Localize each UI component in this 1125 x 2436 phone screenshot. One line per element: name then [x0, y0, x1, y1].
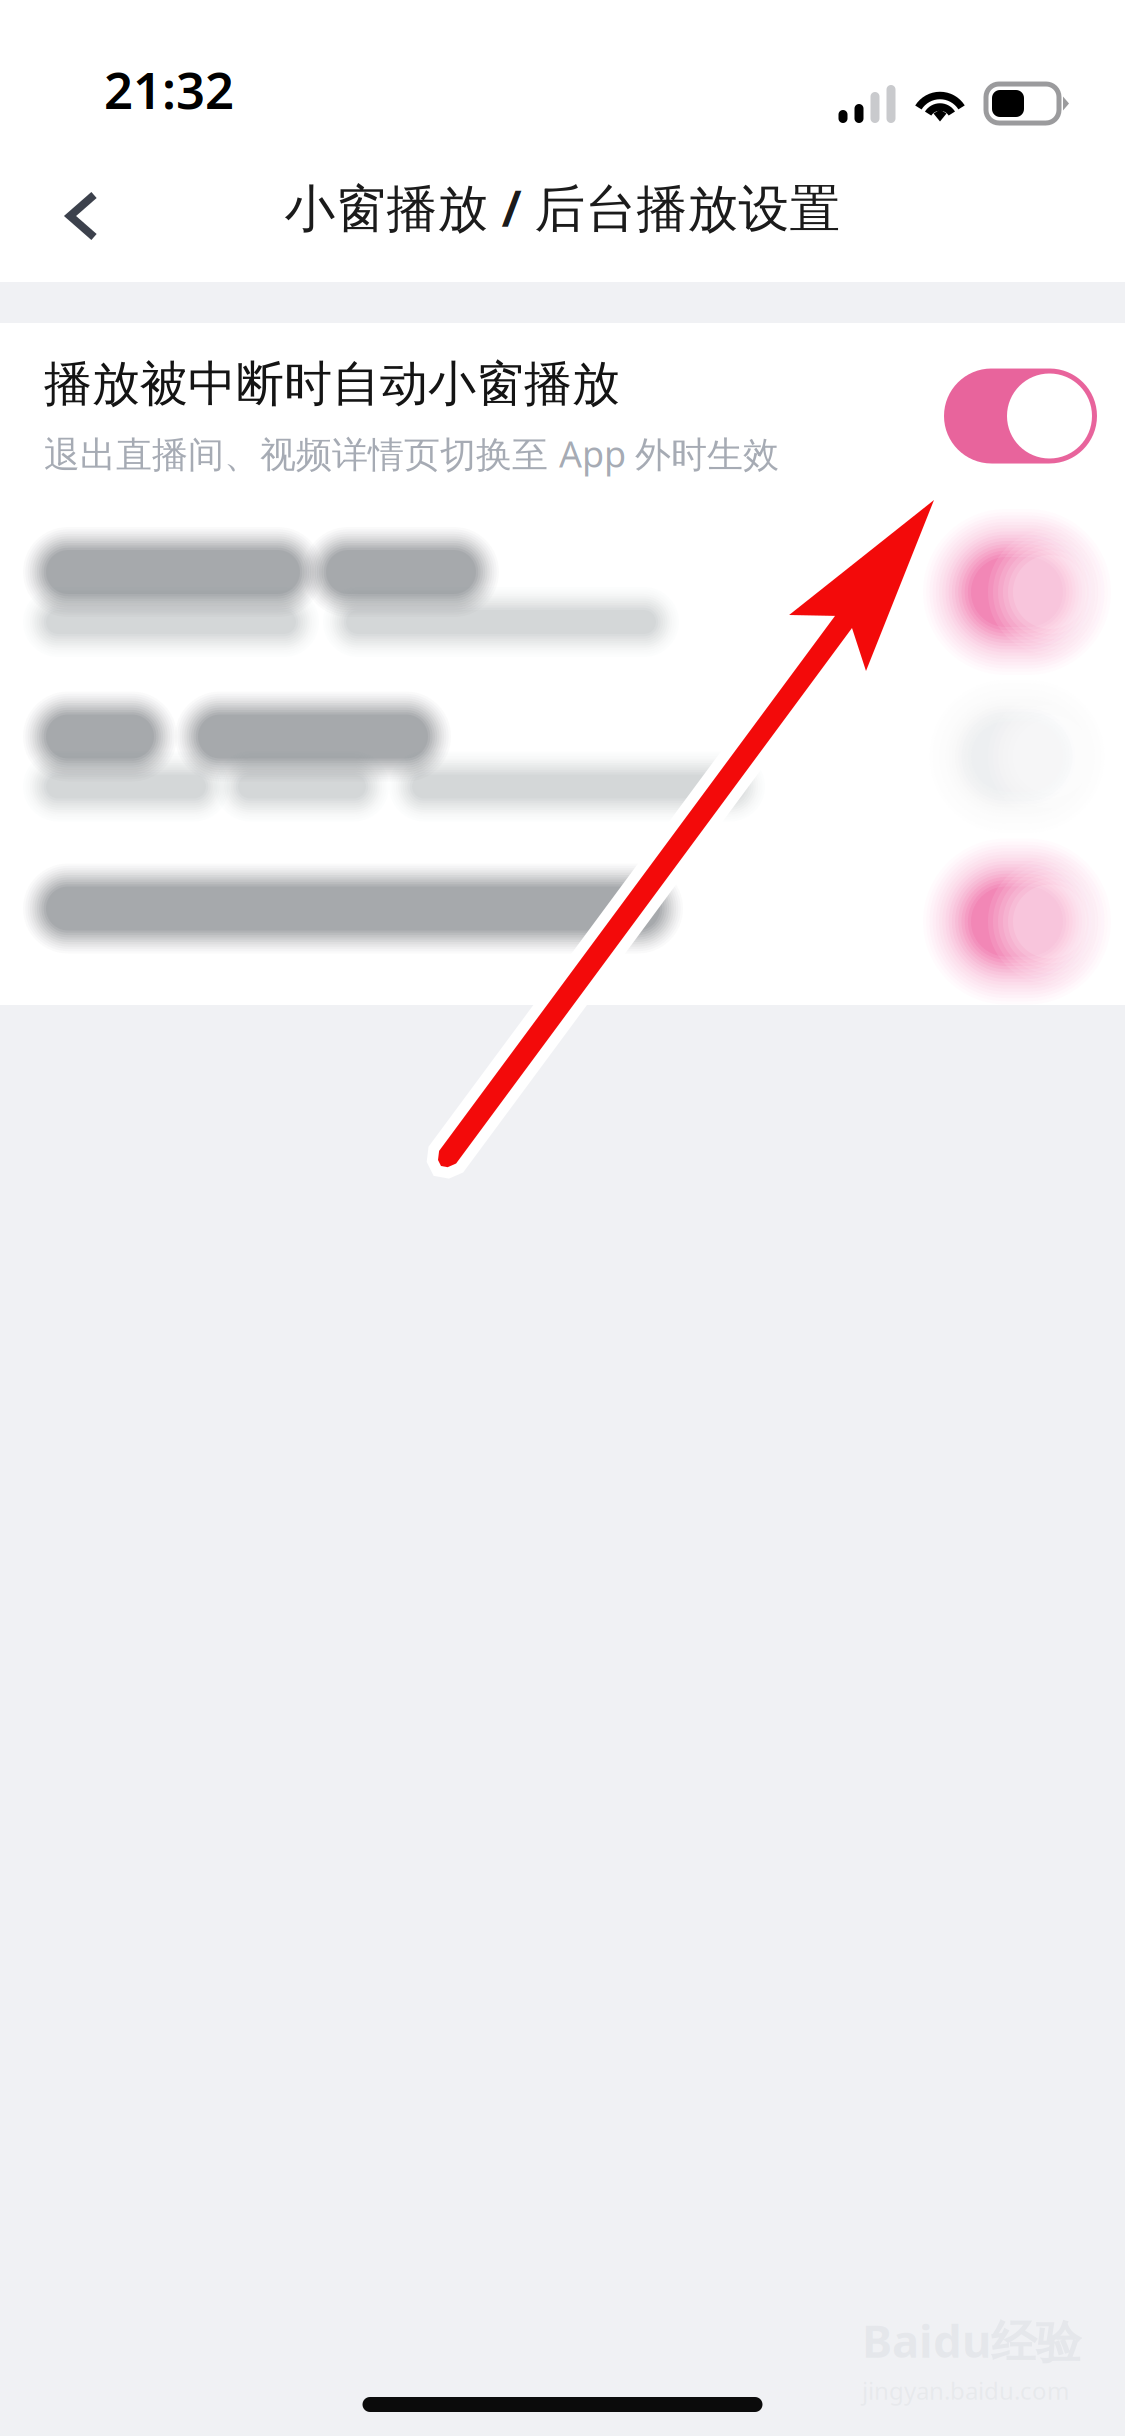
button[interactable]: 返回 [0, 137, 140, 277]
staticText: 21:32 [104, 56, 234, 123]
button[interactable]: 播放被中断时自动小窗播放 [0, 323, 1125, 509]
staticText: 退出直播间、视频详情页切换至 App 外时生效 [44, 430, 779, 477]
staticText: Baidu经验 [862, 2310, 1081, 2370]
staticText: 小窗播放 / 后台播放设置 [284, 173, 840, 241]
staticText: 播放被中断时自动小窗播放 [44, 355, 620, 414]
